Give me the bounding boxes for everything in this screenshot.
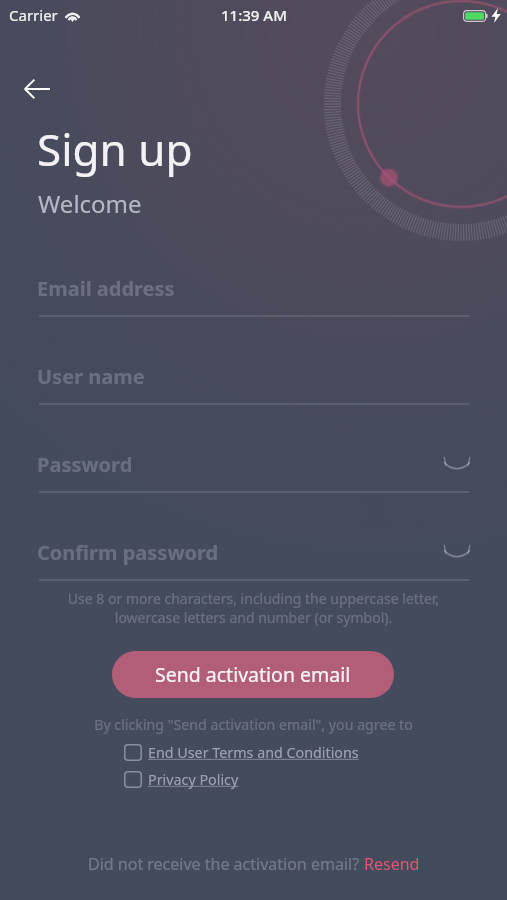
staticText: Sign up [37, 119, 193, 179]
staticText: 11:39 AM [221, 5, 287, 25]
staticText: Use 8 or more characters, including the … [38, 589, 469, 627]
staticText: Carrier [9, 5, 58, 25]
button[interactable]: Resend [364, 853, 420, 875]
staticText: Send activation email [155, 661, 351, 688]
button[interactable]: Send activation email [112, 651, 394, 698]
staticText: Confirm password [37, 539, 219, 566]
staticText: Email address [37, 275, 175, 302]
button[interactable]: Back [17, 69, 57, 109]
button[interactable]: Show password [441, 450, 473, 476]
button[interactable]: Show password [441, 538, 473, 564]
staticText: Resend [364, 853, 420, 875]
staticText: Did not receive the activation email? [88, 853, 364, 875]
staticText: Privacy Policy [148, 770, 239, 789]
staticText: Password [37, 451, 133, 478]
staticText: Welcome [38, 187, 142, 220]
button[interactable]: Privacy Policy [124, 770, 239, 789]
staticText: By clicking "Send activation email", you… [0, 715, 507, 734]
button[interactable]: End User Terms and Conditions [124, 743, 359, 762]
staticText: End User Terms and Conditions [148, 743, 359, 762]
staticText: User name [37, 363, 145, 390]
